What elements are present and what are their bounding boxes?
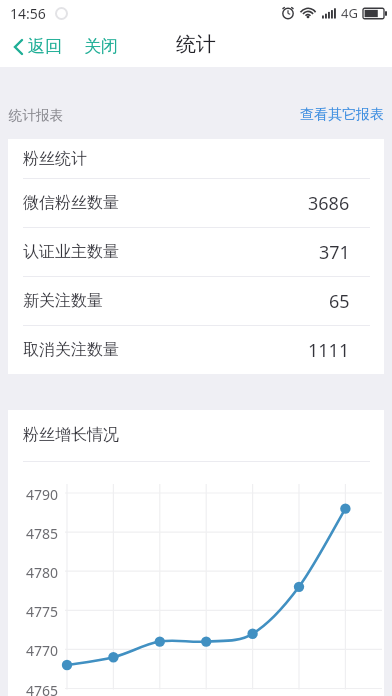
button[interactable]: 关闭 xyxy=(84,36,118,57)
staticText: 3686 xyxy=(308,191,350,216)
button[interactable]: 微信粉丝数量 xyxy=(8,179,384,227)
staticText: 4790 xyxy=(25,485,58,504)
staticText: 统计报表 xyxy=(9,107,63,124)
staticText: 微信粉丝数量 xyxy=(23,193,119,213)
staticText: 4G xyxy=(341,4,358,22)
staticText: 认证业主数量 xyxy=(23,242,119,262)
staticText: 返回 xyxy=(28,36,62,57)
staticText: 1111 xyxy=(308,338,350,363)
staticText: 粉丝增长情况 xyxy=(23,425,119,445)
staticText: 371 xyxy=(319,240,350,265)
button[interactable]: 返回 xyxy=(12,36,62,57)
staticText: 65 xyxy=(329,289,350,314)
button[interactable]: 新关注数量 xyxy=(8,277,384,325)
staticText: 4785 xyxy=(25,524,58,543)
button[interactable]: 认证业主数量 xyxy=(8,228,384,276)
staticText: 4775 xyxy=(25,602,58,621)
staticText: 统计 xyxy=(176,32,216,57)
staticText: 粉丝统计 xyxy=(23,149,87,169)
staticText: 新关注数量 xyxy=(23,291,103,311)
staticText: 关闭 xyxy=(84,36,118,57)
staticText: 14:56 xyxy=(10,4,46,23)
button[interactable]: 查看其它报表 xyxy=(300,106,392,124)
staticText: 4765 xyxy=(25,681,58,696)
staticText: 4780 xyxy=(25,563,58,582)
button[interactable]: 取消关注数量 xyxy=(8,326,384,374)
staticText: 查看其它报表 xyxy=(300,106,384,124)
staticText: 取消关注数量 xyxy=(23,340,119,360)
staticText: 4770 xyxy=(25,641,58,660)
